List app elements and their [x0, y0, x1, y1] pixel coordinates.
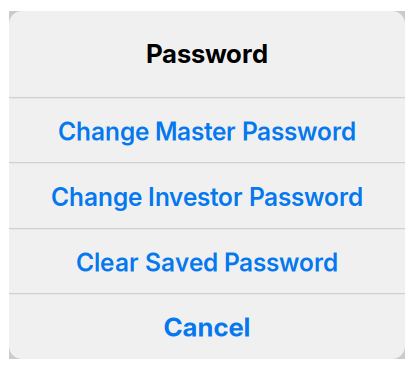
staticText: Clear Saved Password — [76, 248, 338, 277]
button[interactable]: Change Investor Password — [9, 164, 405, 228]
button[interactable]: Change Master Password — [9, 99, 405, 162]
button[interactable]: Cancel — [9, 295, 405, 359]
staticText: Cancel — [163, 311, 250, 343]
staticText: Change Master Password — [58, 117, 356, 146]
staticText: Password — [146, 38, 268, 69]
staticText: Change Investor Password — [51, 182, 363, 212]
button[interactable]: Clear Saved Password — [9, 230, 405, 293]
